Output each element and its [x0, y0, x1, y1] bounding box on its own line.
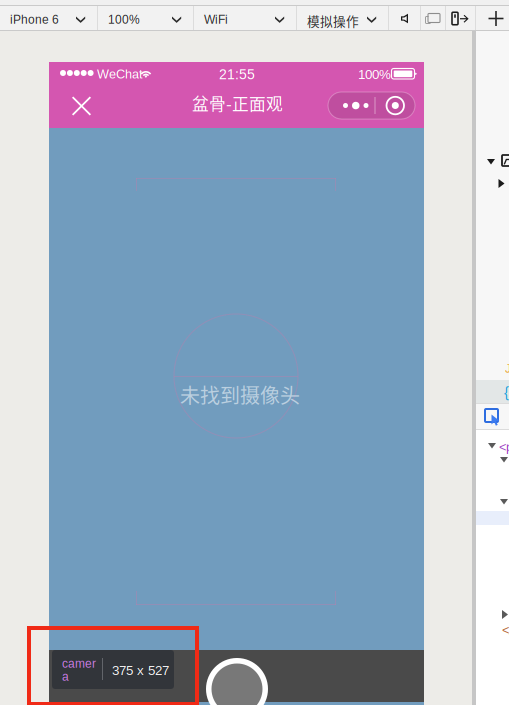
button[interactable]: 模拟操作: [297, 6, 388, 31]
staticText: WiFi: [204, 13, 228, 26]
button[interactable]: iPhone 6: [0, 6, 97, 31]
staticText: 21:55: [219, 66, 255, 82]
staticText: 模拟操作: [307, 11, 359, 30]
staticText: 375 x 527: [112, 663, 169, 678]
staticText: 盆骨-正面观: [192, 91, 283, 115]
staticText: </: [502, 623, 509, 637]
staticText: 100%: [358, 67, 391, 82]
button[interactable]: WiFi: [194, 6, 296, 31]
button[interactable]: Screencast: [421, 6, 445, 31]
staticText: 100%: [108, 13, 140, 26]
staticText: 未找到摄像头: [180, 380, 300, 409]
button[interactable]: Close: [60, 85, 102, 127]
staticText: {: [504, 384, 509, 400]
staticText: <p: [499, 440, 509, 454]
button[interactable]: Add: [476, 6, 509, 31]
staticText: JS: [505, 362, 509, 375]
button[interactable]: 100%: [98, 6, 193, 31]
staticText: camer: [62, 657, 96, 670]
button[interactable]: Mini program menu: [328, 92, 415, 119]
button[interactable]: Device: [446, 6, 475, 31]
staticText: iPhone 6: [10, 13, 59, 26]
button[interactable]: Take photo: [206, 658, 268, 705]
staticText: a: [62, 670, 69, 683]
button[interactable]: Sound: [389, 6, 420, 31]
staticText: WeChat: [97, 67, 143, 81]
